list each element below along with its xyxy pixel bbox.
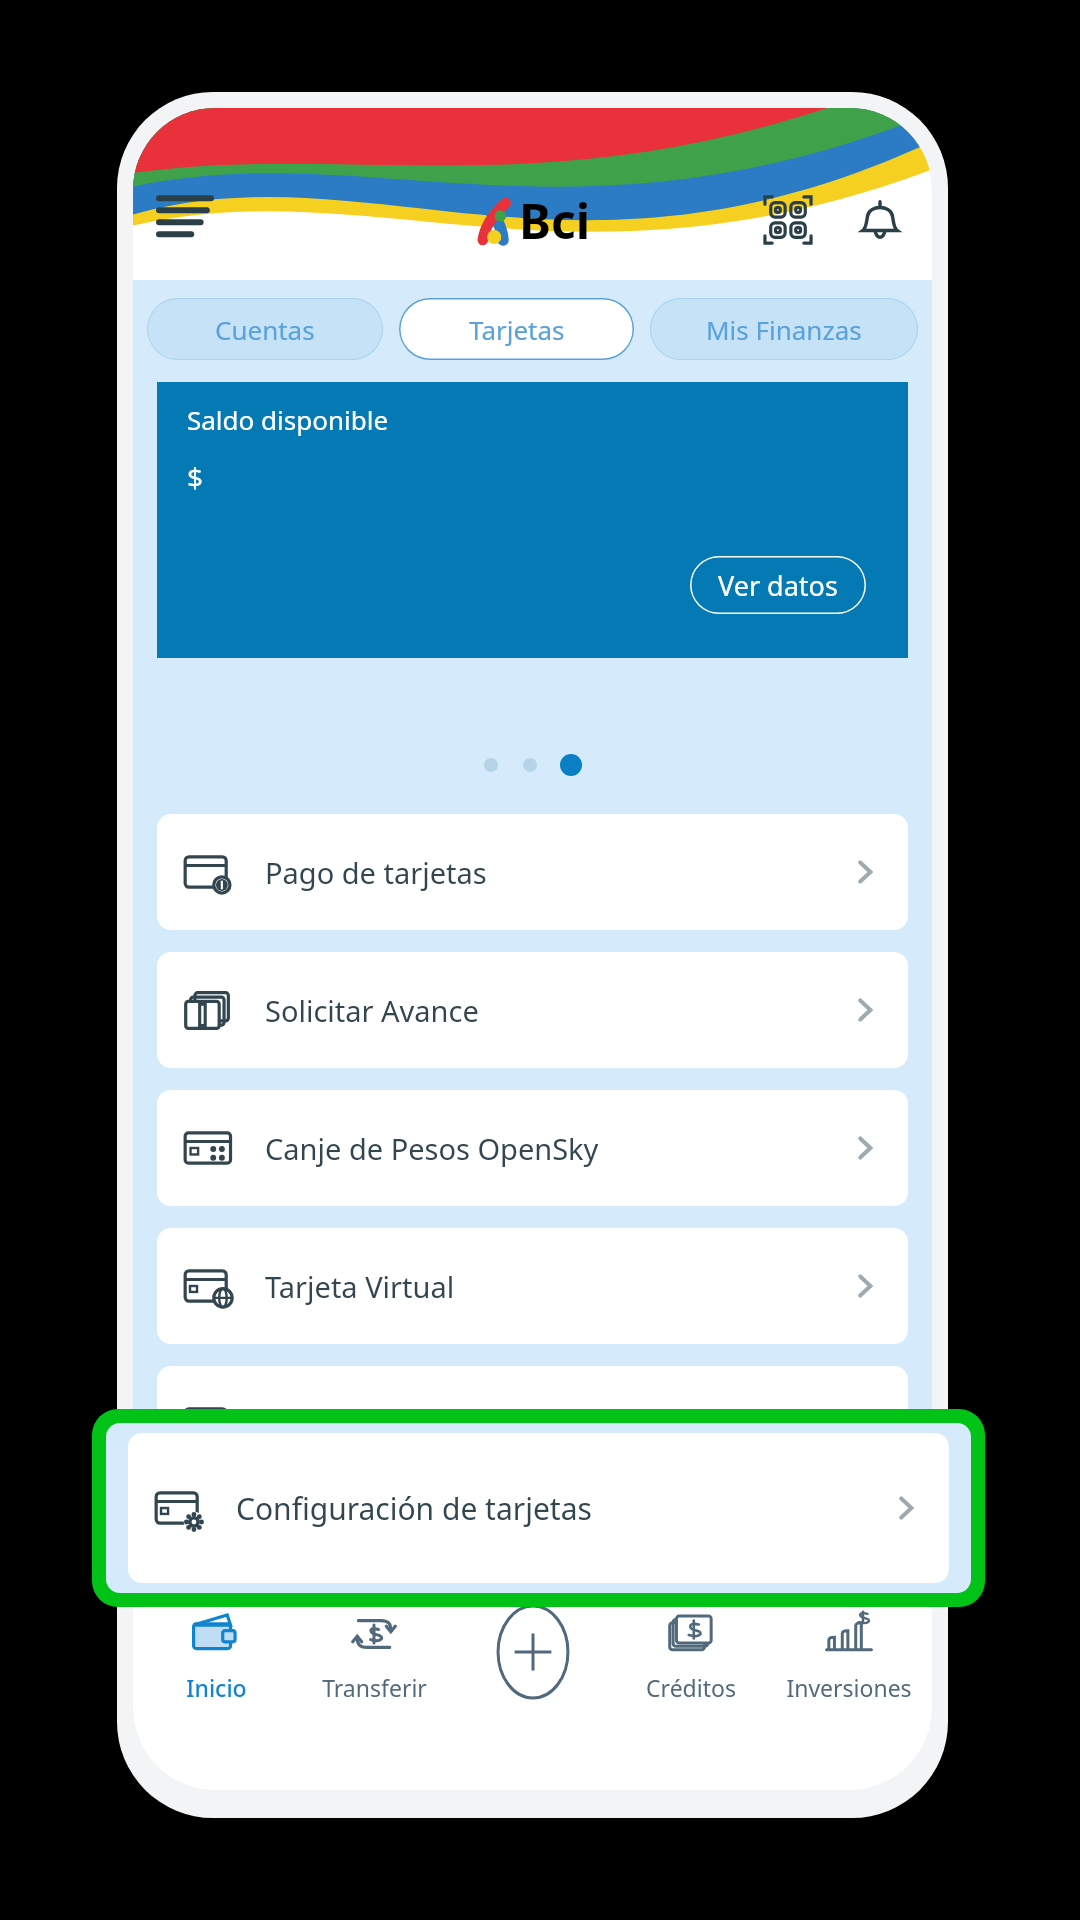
button[interactable]: Cuentas <box>147 298 383 360</box>
button[interactable]: Créditos <box>616 1606 766 1703</box>
staticText: Canje de Pesos OpenSky <box>265 1129 599 1168</box>
staticText: Tarjeta Virtual <box>265 1267 455 1306</box>
staticText: Solicitar Avance <box>265 991 479 1030</box>
staticText: Configuración de tarjetas <box>236 1488 592 1529</box>
staticText: Tarjetas <box>469 312 565 347</box>
button[interactable]: Add <box>458 1606 608 1706</box>
staticText: Bci <box>519 188 591 253</box>
button[interactable]: Transferir <box>299 1606 449 1703</box>
staticText: Inversiones <box>786 1672 912 1703</box>
button[interactable]: Scan QR code <box>754 186 822 254</box>
staticText: Transferir <box>322 1672 427 1703</box>
button[interactable]: Configuración de tarjetas <box>128 1433 949 1583</box>
button[interactable]: Inicio <box>141 1606 291 1703</box>
button[interactable]: Mis Finanzas <box>650 298 918 360</box>
button[interactable]: Saldo disponible <box>157 382 908 658</box>
staticText: Créditos <box>646 1672 736 1703</box>
button[interactable]: Open menu <box>147 178 223 254</box>
button[interactable]: Tarjetas <box>399 298 634 360</box>
staticText: Saldo disponible <box>187 402 389 437</box>
staticText: Cuentas <box>215 312 315 347</box>
staticText: Inicio <box>186 1672 247 1703</box>
button[interactable]: Configuración de tarjetas <box>157 1366 908 1482</box>
staticText: Ver datos <box>718 567 838 604</box>
staticText: Mis Finanzas <box>706 312 862 347</box>
staticText: $ <box>187 458 204 496</box>
button[interactable]: Solicitar Avance <box>157 952 908 1068</box>
button[interactable]: Ver datos <box>690 556 866 614</box>
staticText: Configuración de tarjetas <box>265 1405 609 1444</box>
button[interactable]: Notifications <box>846 186 914 254</box>
staticText: Pago de tarjetas <box>265 853 487 892</box>
button[interactable]: Tarjeta Virtual <box>157 1228 908 1344</box>
button[interactable]: Pago de tarjetas <box>157 814 908 930</box>
button[interactable]: Canje de Pesos OpenSky <box>157 1090 908 1206</box>
button[interactable]: Inversiones <box>774 1606 924 1703</box>
